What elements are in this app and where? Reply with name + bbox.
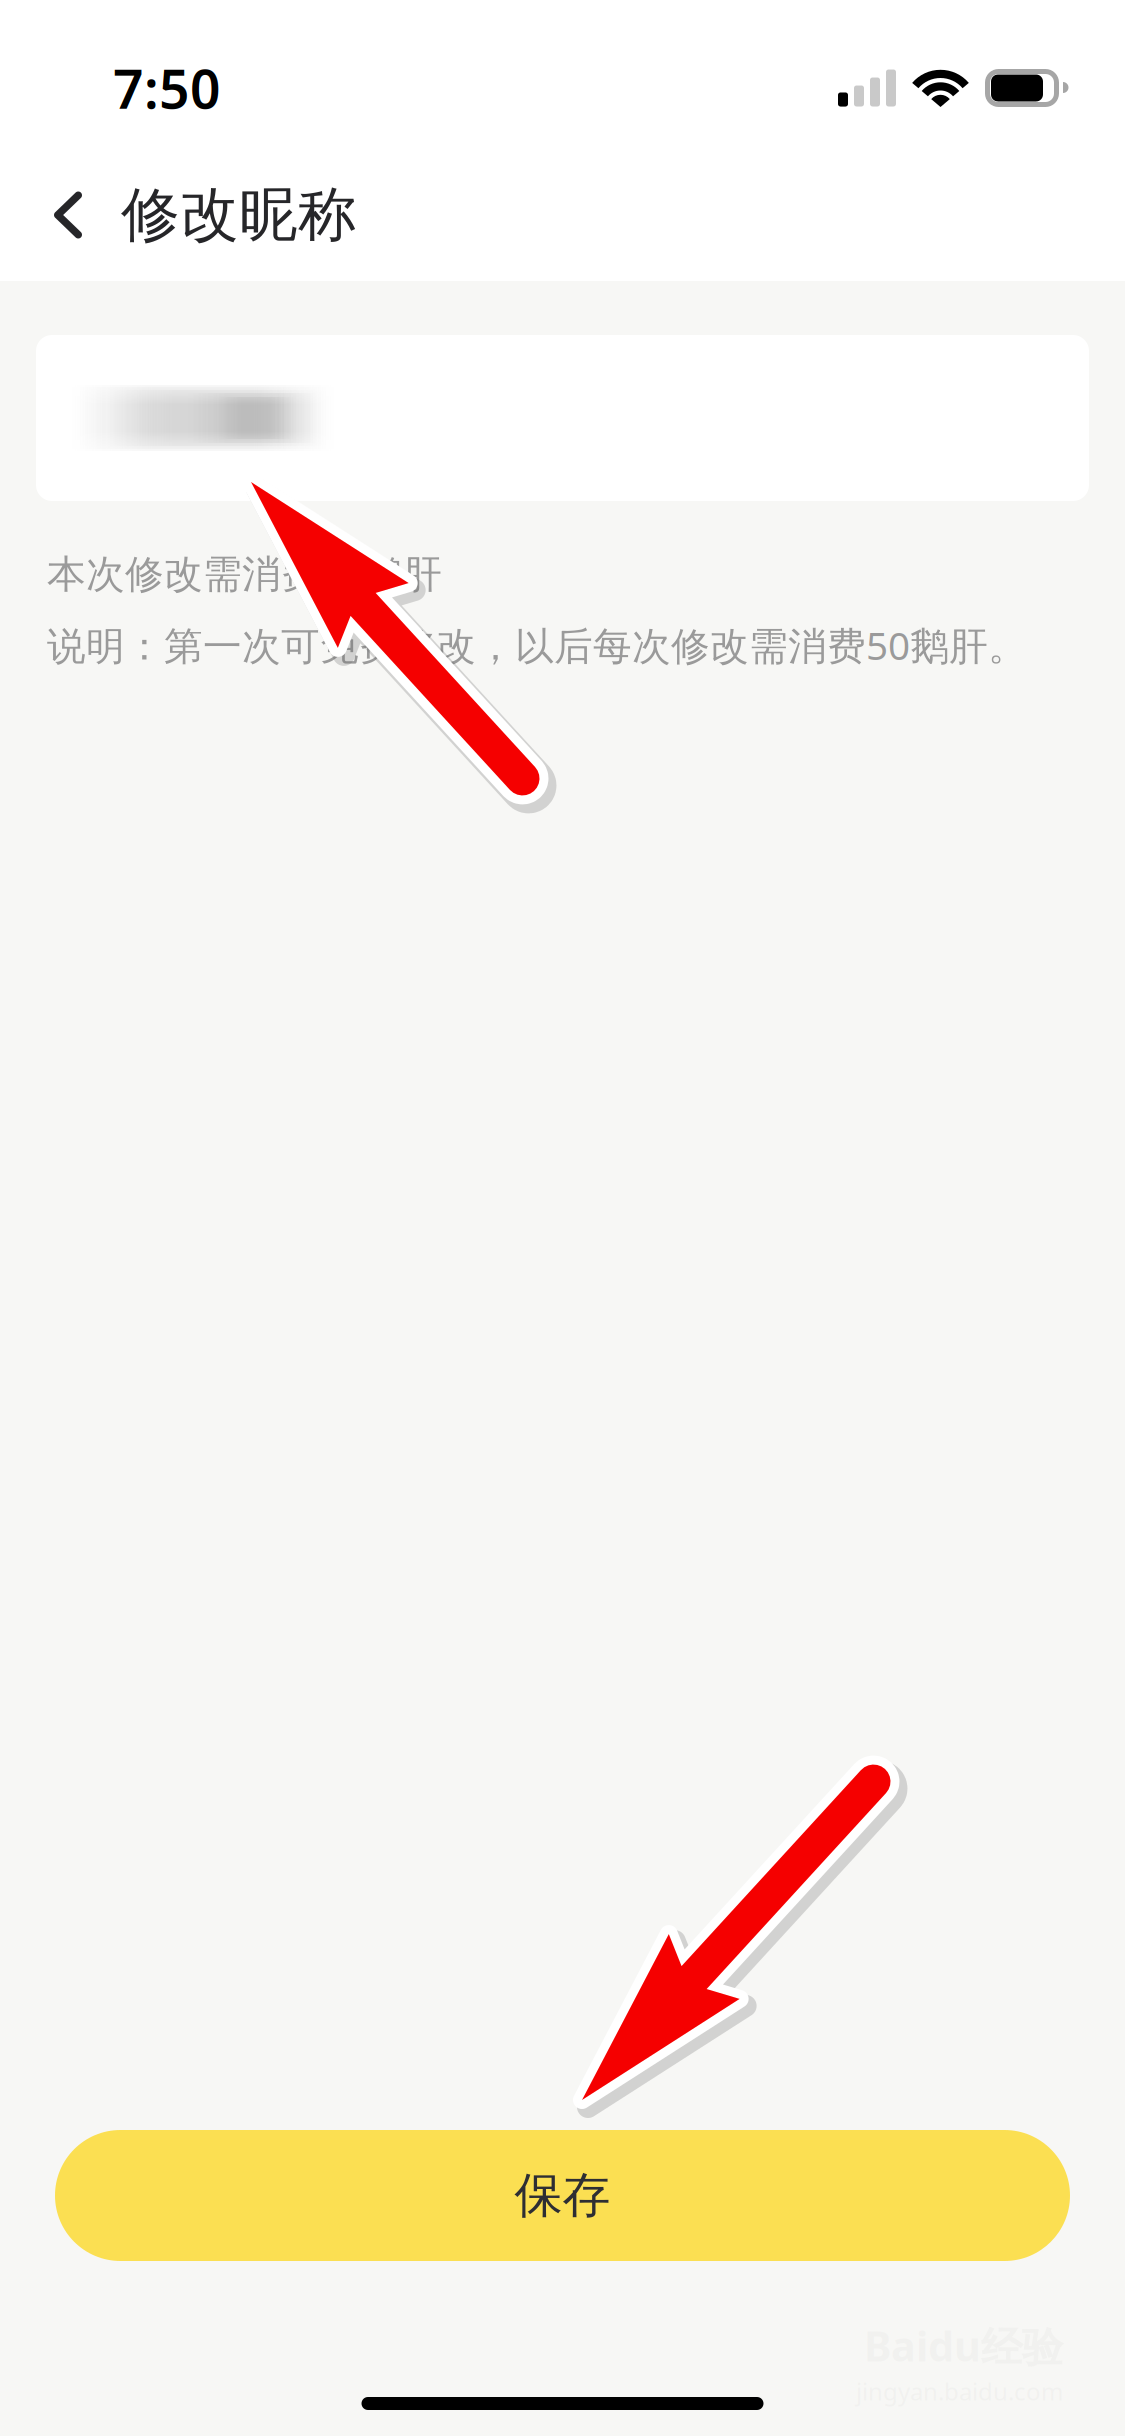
staticText: 7:50 bbox=[113, 53, 221, 123]
staticText: 本次修改需消费50鹅肝 bbox=[47, 547, 442, 598]
button[interactable]: 保存 bbox=[55, 2130, 1070, 2261]
staticText: 说明：第一次可免费修改，以后每次修改需消费50鹅肝。 bbox=[47, 619, 1027, 671]
button[interactable]: Back bbox=[0, 169, 121, 260]
staticText: 修改昵称 bbox=[121, 179, 357, 251]
staticText: 保存 bbox=[514, 2166, 610, 2225]
